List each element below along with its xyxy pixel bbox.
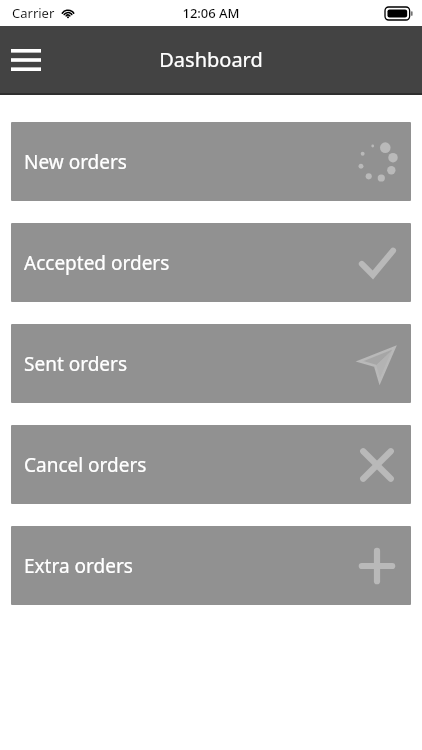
button[interactable]: Extra orders (11, 526, 411, 605)
staticText: Sent orders (24, 351, 127, 377)
staticText: Dashboard (159, 46, 263, 73)
button[interactable]: New orders (11, 122, 411, 201)
staticText: New orders (24, 149, 127, 175)
staticText: 12:06 AM (182, 4, 240, 22)
button[interactable]: Cancel orders (11, 425, 411, 504)
button[interactable]: Open navigation menu (6, 40, 46, 80)
staticText: Cancel orders (24, 452, 147, 478)
button[interactable]: Accepted orders (11, 223, 411, 302)
staticText: Extra orders (24, 553, 133, 579)
staticText: Carrier (12, 4, 55, 22)
button[interactable]: Sent orders (11, 324, 411, 403)
staticText: Accepted orders (24, 250, 170, 276)
